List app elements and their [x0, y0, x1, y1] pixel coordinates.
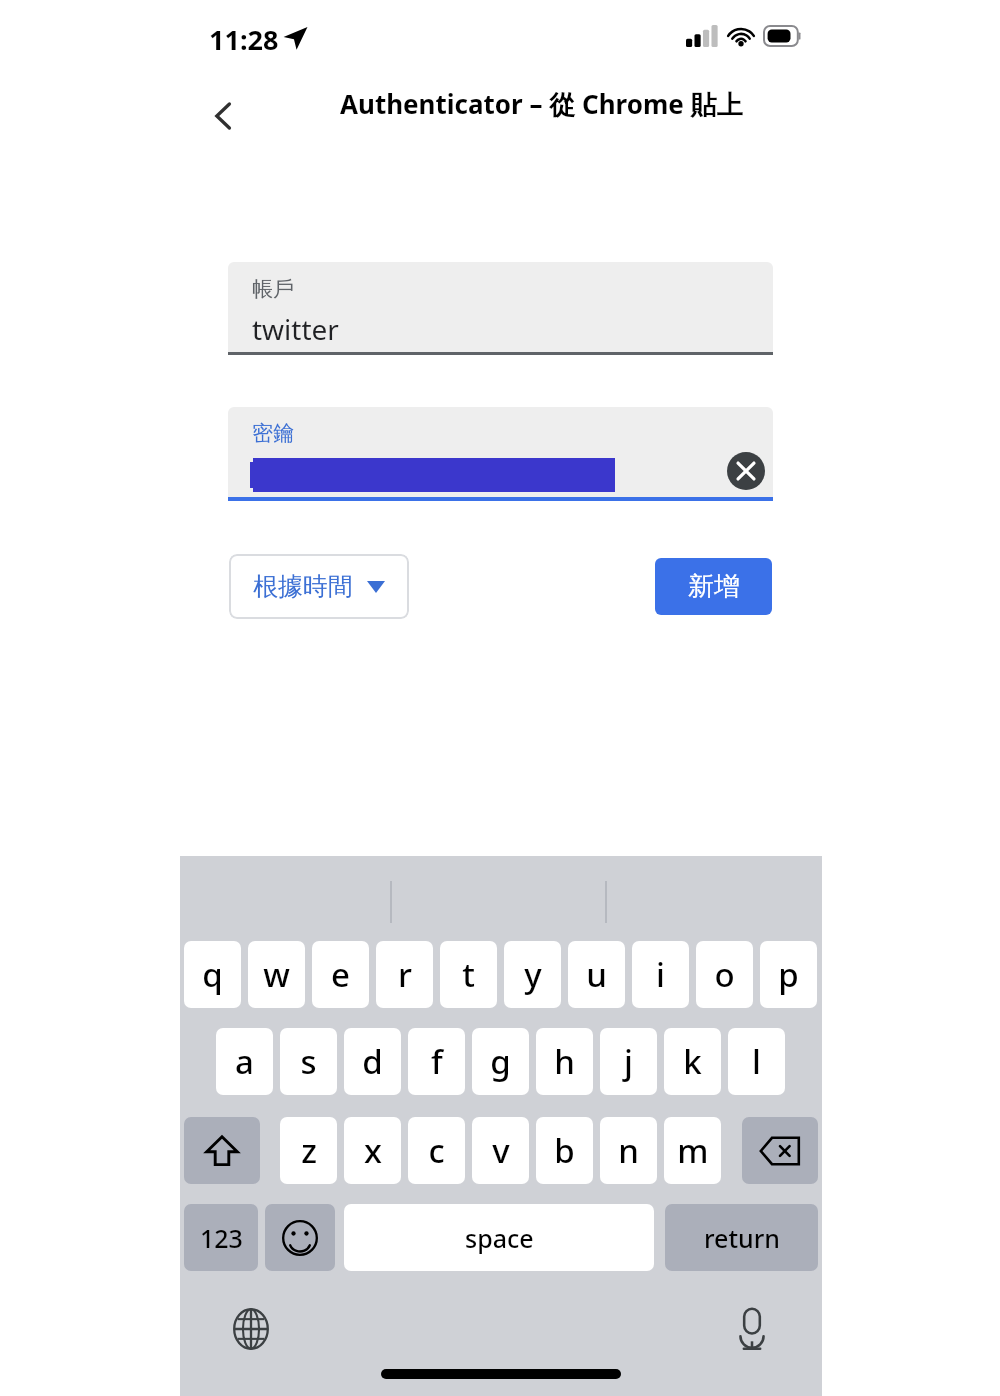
staticText: q [202, 952, 223, 997]
button[interactable]: 根據時間 [229, 554, 409, 619]
staticText: z [301, 1128, 317, 1173]
staticText: 密鑰 [252, 420, 294, 446]
button[interactable]: 帳戶 [228, 262, 773, 352]
staticText: 帳戶 [252, 276, 294, 302]
button[interactable]: x [344, 1117, 401, 1184]
staticText: y [524, 952, 542, 997]
button[interactable]: f [408, 1028, 465, 1095]
button[interactable]: Back [196, 88, 252, 144]
staticText: 11:28 [209, 21, 279, 58]
button[interactable]: z [280, 1117, 337, 1184]
button[interactable]: e [312, 941, 369, 1008]
staticText: c [428, 1128, 445, 1173]
button[interactable]: b [536, 1117, 593, 1184]
staticText: i [656, 952, 665, 997]
button[interactable]: r [376, 941, 433, 1008]
button[interactable]: h [536, 1028, 593, 1095]
staticText: m [677, 1128, 709, 1173]
button[interactable]: Clear text [725, 450, 767, 492]
staticText: p [778, 952, 799, 997]
staticText: b [554, 1128, 575, 1173]
button[interactable]: Dictation [725, 1302, 779, 1356]
staticText: d [362, 1039, 383, 1084]
button[interactable]: 新增 [655, 558, 772, 615]
button[interactable]: j [600, 1028, 657, 1095]
button[interactable]: s [280, 1028, 337, 1095]
staticText: n [618, 1128, 639, 1173]
button[interactable]: o [696, 941, 753, 1008]
button[interactable]: t [440, 941, 497, 1008]
button[interactable]: n [600, 1117, 657, 1184]
button[interactable]: i [632, 941, 689, 1008]
staticText: x [364, 1128, 382, 1173]
button[interactable]: Change keyboard [224, 1302, 278, 1356]
button[interactable]: k [664, 1028, 721, 1095]
staticText: return [704, 1221, 780, 1255]
button[interactable]: Shift [184, 1117, 260, 1184]
staticText: Authenticator – 從 Chrome 貼上 [340, 86, 743, 122]
staticText: 新增 [688, 570, 740, 603]
button[interactable]: Numbers [184, 1204, 258, 1271]
staticText: 123 [200, 1221, 243, 1255]
button[interactable]: y [504, 941, 561, 1008]
button[interactable]: q [184, 941, 241, 1008]
button[interactable]: c [408, 1117, 465, 1184]
button[interactable]: p [760, 941, 817, 1008]
staticText: space [465, 1221, 534, 1255]
staticText: k [683, 1039, 702, 1084]
staticText: u [586, 952, 607, 997]
button[interactable]: d [344, 1028, 401, 1095]
staticText: f [431, 1039, 443, 1084]
button[interactable]: v [472, 1117, 529, 1184]
staticText: o [714, 952, 735, 997]
button[interactable]: w [248, 941, 305, 1008]
staticText: h [554, 1039, 575, 1084]
staticText: g [490, 1039, 511, 1084]
staticText: e [331, 952, 350, 997]
staticText: w [263, 952, 290, 997]
staticText: 根據時間 [253, 571, 353, 602]
button[interactable]: g [472, 1028, 529, 1095]
staticText: l [752, 1039, 761, 1084]
staticText: v [492, 1128, 510, 1173]
button[interactable]: 密鑰 [228, 407, 773, 497]
staticText: j [624, 1039, 633, 1084]
staticText: s [300, 1039, 317, 1084]
staticText: r [398, 952, 412, 997]
staticText: a [235, 1039, 254, 1084]
button[interactable]: space [344, 1204, 654, 1271]
button[interactable]: a [216, 1028, 273, 1095]
button[interactable]: Return [665, 1204, 818, 1271]
staticText: t [462, 952, 475, 997]
button[interactable]: Backspace [742, 1117, 818, 1184]
button[interactable]: m [664, 1117, 721, 1184]
staticText: twitter [252, 310, 339, 348]
button[interactable]: l [728, 1028, 785, 1095]
button[interactable]: Emoji [265, 1204, 335, 1271]
button[interactable]: u [568, 941, 625, 1008]
